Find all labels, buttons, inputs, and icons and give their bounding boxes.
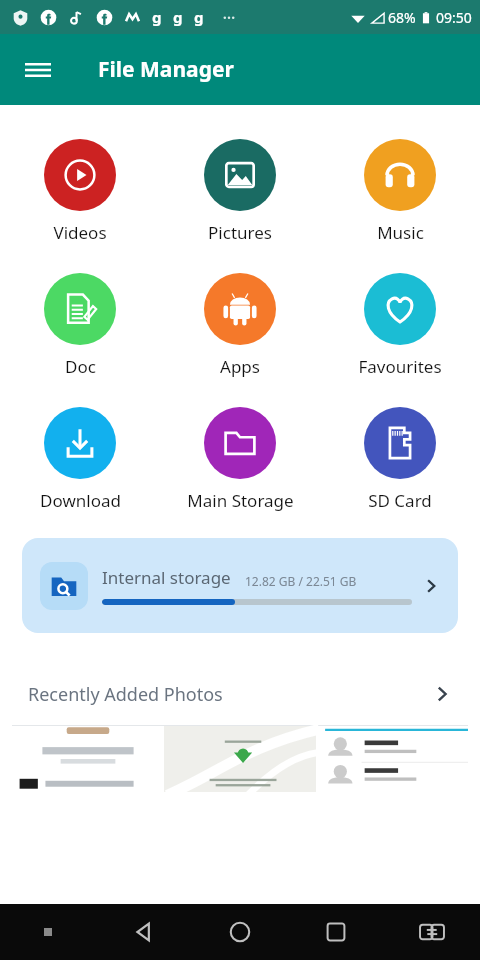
staticText: Main Storage xyxy=(187,489,294,512)
button[interactable]: Home xyxy=(192,904,288,960)
staticText: 12.82 GB / 22.51 GB xyxy=(245,573,357,589)
staticText: g xyxy=(194,7,204,27)
button[interactable]: SD Card xyxy=(320,407,480,512)
staticText: Recently Added Photos xyxy=(28,682,432,707)
button[interactable]: Open navigation menu xyxy=(14,46,62,94)
button[interactable]: Download xyxy=(0,407,160,512)
button[interactable]: Videos xyxy=(0,139,160,244)
staticText: Internal storage xyxy=(102,566,231,589)
staticText: Doc xyxy=(65,355,96,378)
button[interactable]: Doc xyxy=(0,273,160,378)
staticText: Download xyxy=(40,489,121,512)
staticText: SD Card xyxy=(368,489,432,512)
button[interactable]: Main Storage xyxy=(160,407,320,512)
button[interactable]: Apps xyxy=(160,273,320,378)
staticText: Music xyxy=(377,221,424,244)
button[interactable]: Internal storage xyxy=(22,538,458,633)
staticText: Videos xyxy=(53,221,107,244)
button[interactable] xyxy=(12,726,164,792)
staticText: Apps xyxy=(220,355,260,378)
staticText: Favourites xyxy=(358,355,442,378)
button[interactable]: Favourites xyxy=(320,273,480,378)
button[interactable]: Music xyxy=(320,139,480,244)
button[interactable]: Recently Added Photos xyxy=(12,663,468,725)
staticText: g xyxy=(152,7,162,27)
button[interactable]: Keyboard indicator xyxy=(0,904,96,960)
staticText: 68% xyxy=(388,8,416,27)
button[interactable] xyxy=(164,726,316,792)
button[interactable]: Back xyxy=(96,904,192,960)
button[interactable]: Switch apps xyxy=(384,904,480,960)
staticText: g xyxy=(173,7,183,27)
button[interactable]: Pictures xyxy=(160,139,320,244)
button[interactable] xyxy=(316,726,468,792)
staticText: Pictures xyxy=(208,221,272,244)
button[interactable]: Recent apps xyxy=(288,904,384,960)
staticText: File Manager xyxy=(98,55,234,84)
staticText: 09:50 xyxy=(436,8,472,27)
